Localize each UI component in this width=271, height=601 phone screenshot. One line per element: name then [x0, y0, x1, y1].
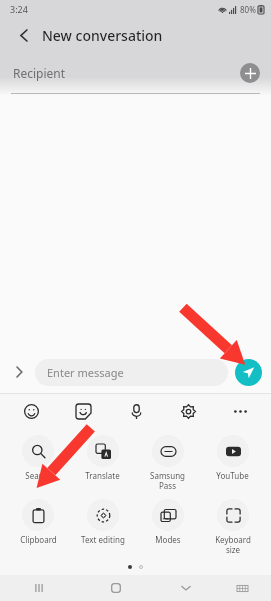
staticText: Samsung Pass — [150, 470, 185, 491]
staticText: Text editing — [81, 534, 125, 545]
button[interactable]: Home — [77, 575, 155, 601]
staticText: New conversation — [42, 26, 163, 45]
staticText: Search — [25, 470, 51, 481]
staticText: Recipient — [13, 65, 66, 81]
button[interactable]: Recents — [0, 575, 77, 601]
staticText: Keyboard size — [215, 534, 251, 555]
button[interactable]: Add recipient — [240, 63, 260, 83]
staticText: Modes — [155, 534, 181, 545]
button[interactable]: Back — [12, 23, 36, 47]
button[interactable]: Emoji — [18, 398, 44, 424]
button[interactable]: Send — [235, 359, 262, 386]
button[interactable]: Translate — [70, 433, 135, 483]
staticText: YouTube — [216, 470, 249, 481]
staticText: 3:24 — [10, 3, 28, 15]
button[interactable]: Modes — [135, 497, 200, 547]
button[interactable]: More options — [227, 398, 253, 424]
button[interactable]: Samsung Pass — [135, 433, 200, 493]
button[interactable]: Text editing — [70, 497, 135, 547]
staticText: Clipboard — [20, 534, 57, 545]
button[interactable]: Keyboard size — [200, 497, 265, 557]
button[interactable]: Voice input — [123, 398, 149, 424]
staticText: Enter message — [47, 365, 124, 380]
button[interactable]: Hide keyboard — [155, 575, 217, 601]
button[interactable]: YouTube — [200, 433, 265, 483]
staticText: 80% — [240, 4, 256, 15]
button[interactable]: Expand — [9, 362, 29, 382]
button[interactable]: Stickers — [70, 398, 96, 424]
button[interactable]: Clipboard — [6, 497, 70, 547]
button[interactable]: Enter message — [35, 359, 228, 386]
button[interactable]: Keyboard layout — [217, 575, 267, 601]
staticText: Translate — [85, 470, 120, 481]
button[interactable]: Search — [6, 433, 70, 483]
button[interactable]: Settings — [175, 398, 201, 424]
